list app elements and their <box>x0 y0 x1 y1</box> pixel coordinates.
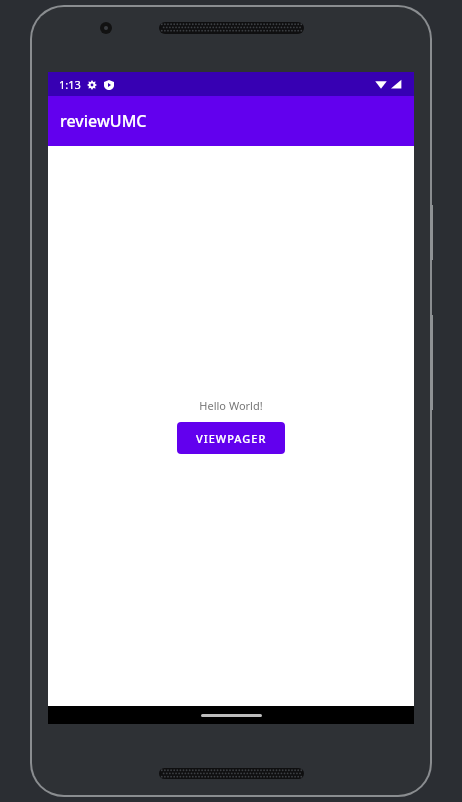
staticText: reviewUMC <box>60 110 147 132</box>
staticText: 1:13 <box>59 77 81 92</box>
button[interactable]: Home gesture <box>201 714 262 717</box>
staticText: Hello World! <box>199 398 263 413</box>
staticText: VIEWPAGER <box>196 431 267 446</box>
button[interactable]: VIEWPAGER <box>177 422 285 454</box>
